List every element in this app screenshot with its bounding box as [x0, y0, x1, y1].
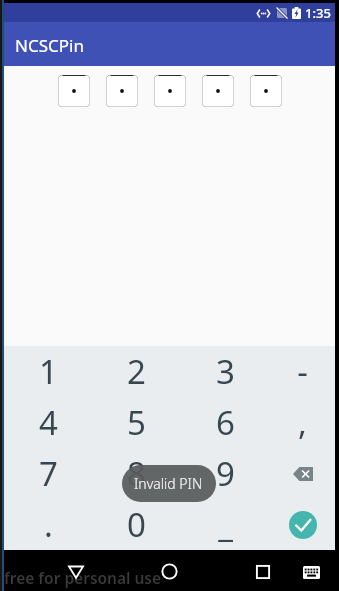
- staticText: 1:35: [305, 4, 331, 22]
- button[interactable]: _: [181, 499, 270, 550]
- button[interactable]: [58, 75, 90, 107]
- button[interactable]: [202, 75, 234, 107]
- button[interactable]: 7: [4, 448, 92, 499]
- staticText: Invalid PIN: [134, 474, 203, 493]
- staticText: 4: [39, 400, 58, 445]
- staticText: _: [218, 502, 233, 547]
- button[interactable]: Recent apps: [256, 565, 270, 579]
- button[interactable]: 0: [92, 499, 181, 550]
- staticText: 9: [216, 451, 235, 496]
- staticText: 5: [127, 400, 146, 445]
- other: Backspace: [293, 467, 313, 481]
- staticText: 2: [127, 349, 146, 394]
- staticText: 3: [216, 349, 235, 394]
- staticText: .: [44, 502, 53, 547]
- button[interactable]: [106, 75, 138, 107]
- button[interactable]: [154, 75, 186, 107]
- button[interactable]: -: [270, 346, 335, 397]
- button[interactable]: Back: [68, 563, 84, 579]
- button[interactable]: 2: [92, 346, 181, 397]
- staticText: 1: [39, 349, 58, 394]
- button[interactable]: 5: [92, 397, 181, 448]
- button[interactable]: 6: [181, 397, 270, 448]
- button[interactable]: Home: [161, 563, 178, 580]
- button[interactable]: Backspace: [270, 448, 335, 499]
- staticText: 8: [127, 451, 146, 496]
- button[interactable]: .: [4, 499, 92, 550]
- staticText: ,: [298, 400, 307, 445]
- staticText: -: [297, 349, 308, 394]
- button[interactable]: ,: [270, 397, 335, 448]
- button[interactable]: 1: [4, 346, 92, 397]
- button[interactable]: 4: [4, 397, 92, 448]
- button[interactable]: Confirm: [270, 499, 335, 550]
- staticText: 6: [216, 400, 235, 445]
- staticText: NCSCPin: [15, 34, 84, 57]
- button[interactable]: [250, 75, 282, 107]
- button[interactable]: 3: [181, 346, 270, 397]
- staticText: 0: [127, 502, 146, 547]
- button[interactable]: 9: [181, 448, 270, 499]
- button[interactable]: 8: [92, 448, 181, 499]
- staticText: 7: [39, 451, 58, 496]
- other: Confirm: [289, 511, 317, 539]
- button[interactable]: Keyboard: [303, 566, 320, 579]
- staticText: free for personal use: [4, 567, 162, 588]
